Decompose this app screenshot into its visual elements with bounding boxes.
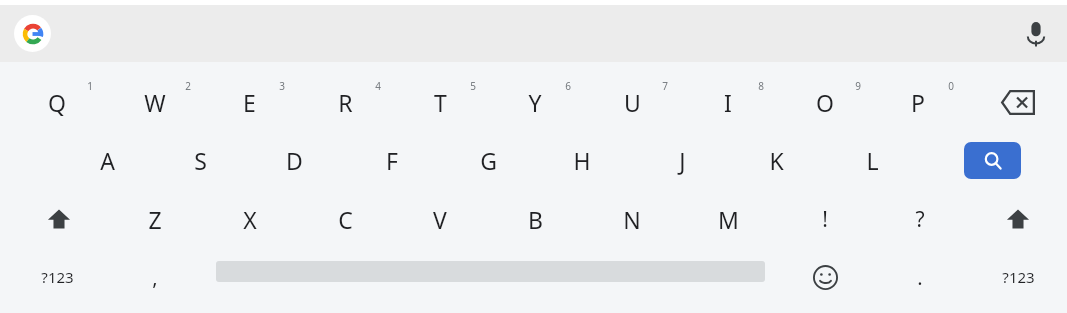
button[interactable]: . xyxy=(888,252,952,302)
staticText: N xyxy=(623,204,641,235)
button[interactable]: I xyxy=(684,74,772,130)
button[interactable]: Backspace xyxy=(982,76,1054,128)
staticText: O xyxy=(816,87,834,118)
staticText: 3 xyxy=(279,79,285,93)
button[interactable]: Google xyxy=(14,15,51,52)
staticText: Y xyxy=(528,87,542,118)
staticText: ! xyxy=(822,205,828,234)
staticText: 9 xyxy=(855,79,861,93)
staticText: 2 xyxy=(185,79,191,93)
staticText: 1 xyxy=(87,79,93,93)
button[interactable]: M xyxy=(684,192,772,247)
button[interactable]: Shift xyxy=(24,193,94,245)
staticText: V xyxy=(433,204,447,235)
staticText: ? xyxy=(915,205,925,234)
staticText: 5 xyxy=(470,79,476,93)
button[interactable]: T xyxy=(396,74,484,130)
staticText: T xyxy=(434,87,447,118)
button[interactable]: J xyxy=(638,133,726,188)
staticText: G xyxy=(480,145,497,176)
staticText: W xyxy=(144,87,166,118)
button[interactable]: L xyxy=(828,133,916,188)
button[interactable]: U xyxy=(588,74,676,130)
button[interactable]: A xyxy=(63,133,151,188)
staticText: Q xyxy=(48,87,66,118)
button[interactable]: F xyxy=(348,133,436,188)
button[interactable]: O xyxy=(781,74,869,130)
button[interactable]: K xyxy=(732,133,820,188)
button[interactable]: Z xyxy=(111,192,199,247)
button[interactable]: C xyxy=(301,192,389,247)
staticText: P xyxy=(911,87,925,118)
staticText: 4 xyxy=(375,79,381,93)
button[interactable]: E xyxy=(205,74,293,130)
button[interactable]: H xyxy=(538,133,626,188)
button[interactable]: Search xyxy=(964,142,1021,179)
staticText: K xyxy=(769,145,784,176)
staticText: L xyxy=(866,145,879,176)
button[interactable]: D xyxy=(250,133,338,188)
button[interactable]: , xyxy=(120,252,190,302)
staticText: Z xyxy=(148,204,162,235)
button[interactable]: ?123 xyxy=(18,252,96,302)
button[interactable]: ?123 xyxy=(979,252,1057,302)
button[interactable]: Shift xyxy=(983,193,1053,245)
button[interactable]: R xyxy=(301,74,389,130)
staticText: , xyxy=(152,264,158,291)
staticText: C xyxy=(338,204,353,235)
staticText: 7 xyxy=(662,79,668,93)
staticText: ?123 xyxy=(41,267,74,287)
staticText: D xyxy=(286,145,303,176)
button[interactable]: G xyxy=(444,133,532,188)
staticText: U xyxy=(624,87,641,118)
button[interactable]: Voice input xyxy=(1017,15,1054,52)
staticText: H xyxy=(573,145,591,176)
staticText: A xyxy=(100,145,115,176)
staticText: ?123 xyxy=(1002,267,1035,287)
button[interactable]: N xyxy=(588,192,676,247)
button[interactable]: Y xyxy=(491,74,579,130)
button[interactable]: S xyxy=(156,133,244,188)
button[interactable]: Emoji xyxy=(793,252,857,302)
staticText: 8 xyxy=(758,79,764,93)
button[interactable]: ? xyxy=(876,192,964,247)
staticText: M xyxy=(718,204,739,235)
staticText: 0 xyxy=(948,79,954,93)
staticText: R xyxy=(338,87,353,118)
button[interactable]: B xyxy=(491,192,579,247)
staticText: X xyxy=(243,204,257,235)
staticText: 6 xyxy=(565,79,571,93)
staticText: B xyxy=(528,204,543,235)
staticText: F xyxy=(386,145,398,176)
staticText: J xyxy=(679,145,686,176)
button[interactable]: V xyxy=(396,192,484,247)
staticText: I xyxy=(724,87,732,118)
button[interactable]: X xyxy=(206,192,294,247)
button[interactable]: ! xyxy=(781,192,869,247)
staticText: . xyxy=(917,264,923,291)
button[interactable]: W xyxy=(111,74,199,130)
button[interactable]: P xyxy=(874,74,962,130)
staticText: S xyxy=(194,145,207,176)
button[interactable]: Q xyxy=(13,74,101,130)
staticText: E xyxy=(243,87,256,118)
